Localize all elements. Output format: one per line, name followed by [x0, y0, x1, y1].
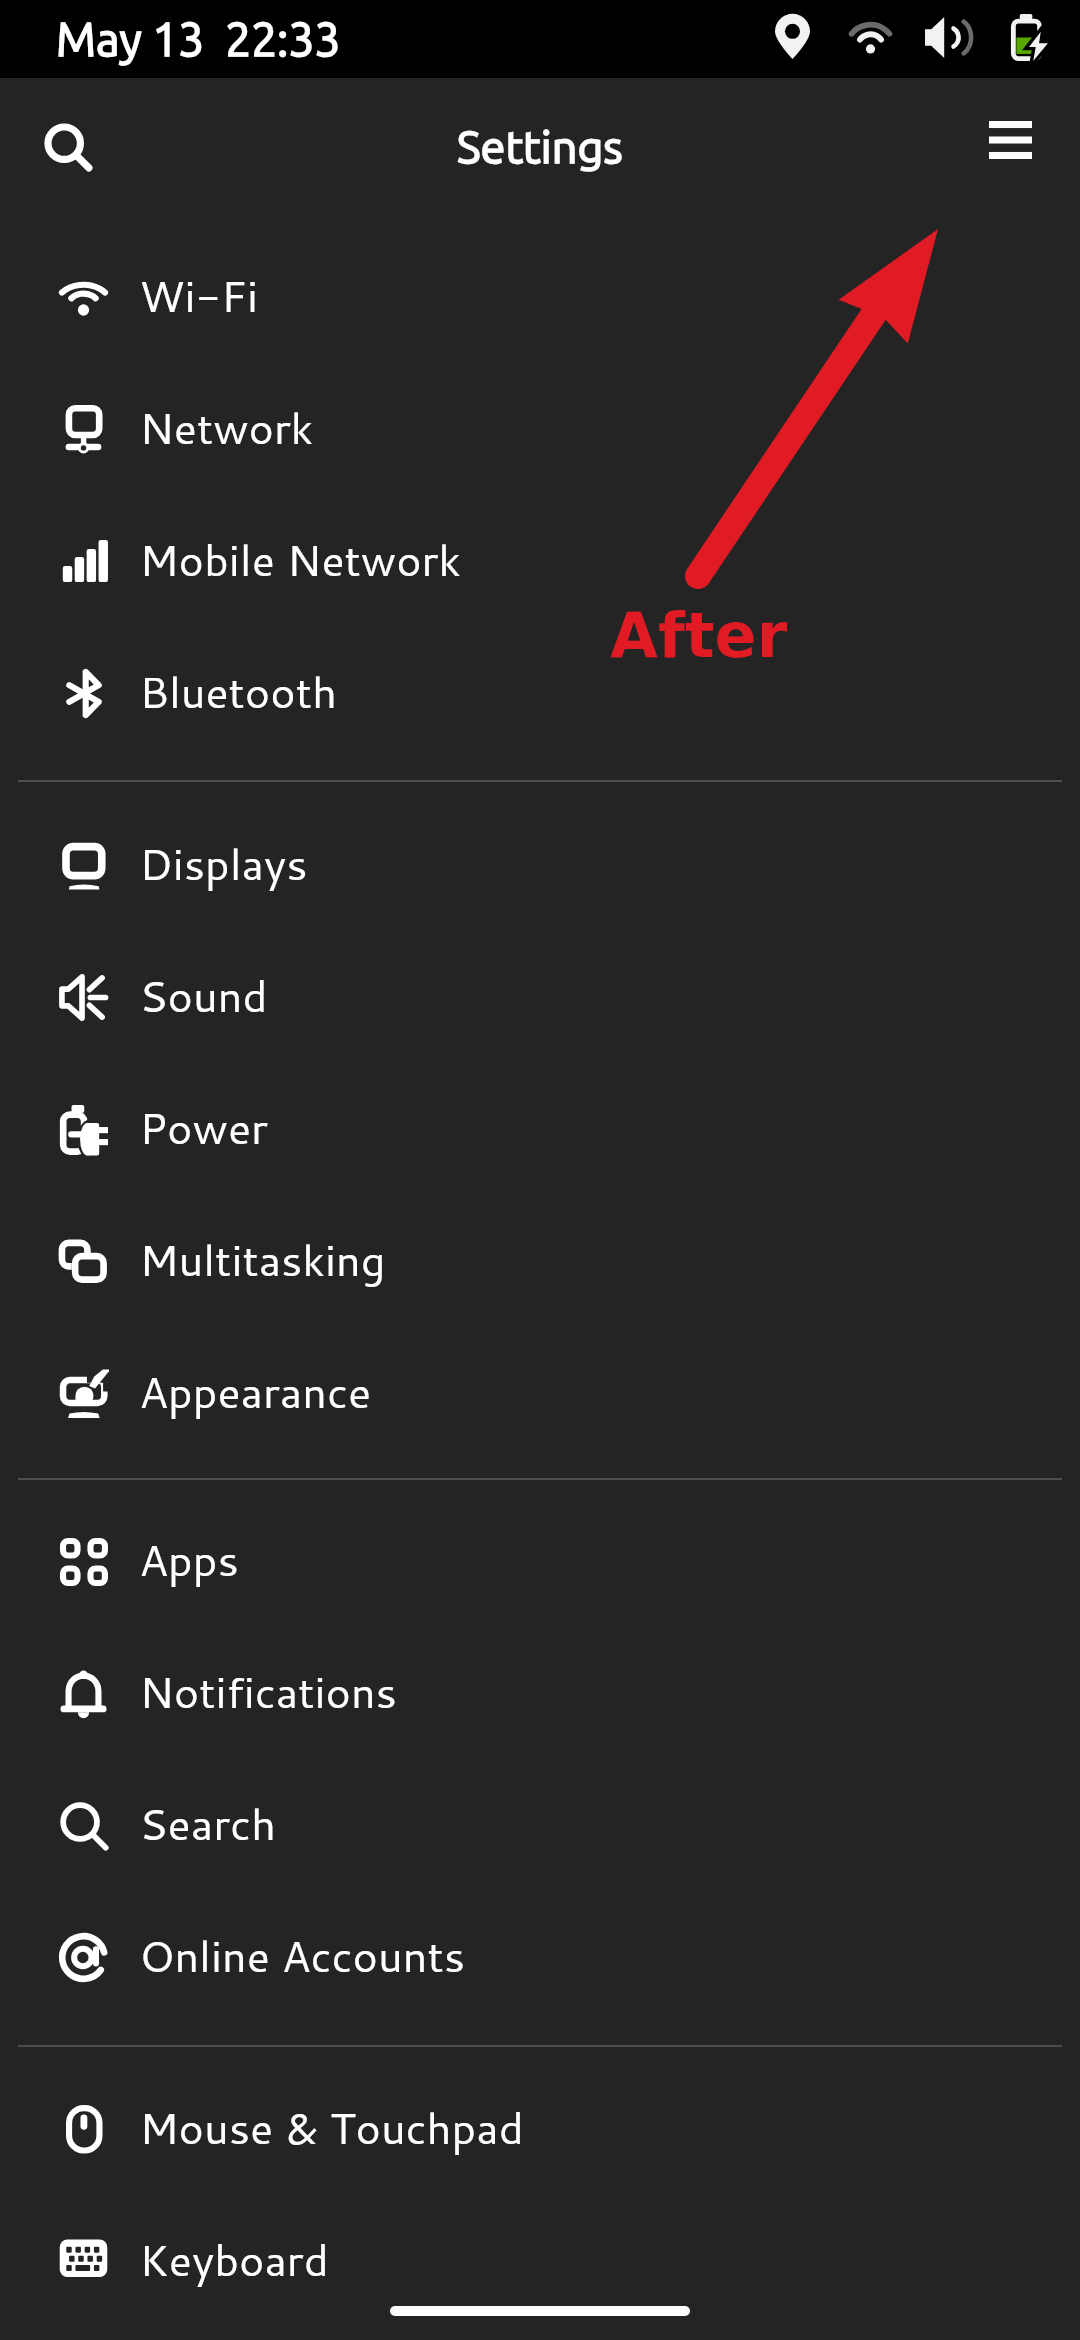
- staticText: Apps: [139, 1529, 239, 1590]
- staticText: Mobile Network: [139, 529, 461, 590]
- button[interactable]: Keyboard: [0, 2195, 1080, 2327]
- staticText: Displays: [139, 833, 308, 894]
- button[interactable]: Sound: [0, 931, 1080, 1063]
- staticText: May 13 22:33: [56, 13, 341, 65]
- button[interactable]: Power: [0, 1063, 1080, 1195]
- staticText: Wi-Fi: [139, 265, 259, 326]
- button[interactable]: Notifications: [0, 1627, 1080, 1759]
- button[interactable]: Mobile Network: [0, 495, 1080, 627]
- staticText: Notifications: [139, 1661, 397, 1722]
- staticText: Power: [139, 1097, 268, 1158]
- button[interactable]: Search: [0, 1759, 1080, 1891]
- button[interactable]: Network: [0, 363, 1080, 495]
- button[interactable]: Mouse & Touchpad: [0, 2063, 1080, 2195]
- staticText: Mouse & Touchpad: [139, 2097, 524, 2158]
- button[interactable]: Bluetooth: [0, 627, 1080, 759]
- button[interactable]: Multitasking: [0, 1195, 1080, 1327]
- button[interactable]: Search: [12, 92, 122, 202]
- button[interactable]: Apps: [0, 1495, 1080, 1627]
- staticText: Network: [139, 397, 314, 458]
- button[interactable]: Displays: [0, 799, 1080, 931]
- staticText: Online Accounts: [139, 1925, 466, 1986]
- staticText: Keyboard: [139, 2229, 329, 2290]
- button[interactable]: Appearance: [0, 1327, 1080, 1459]
- staticText: Appearance: [139, 1361, 372, 1422]
- staticText: After: [610, 599, 788, 671]
- button[interactable]: Menu: [952, 92, 1062, 202]
- staticText: Settings: [457, 121, 623, 171]
- button[interactable]: Wi-Fi: [0, 231, 1080, 363]
- button[interactable]: Online Accounts: [0, 1891, 1080, 2023]
- staticText: Bluetooth: [139, 661, 337, 722]
- staticText: Multitasking: [139, 1229, 386, 1290]
- staticText: Search: [139, 1793, 276, 1854]
- staticText: Sound: [139, 965, 268, 1026]
